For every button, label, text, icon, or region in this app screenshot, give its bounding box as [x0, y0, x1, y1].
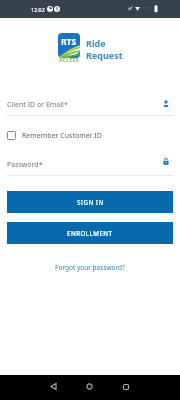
staticText: Remember Customer ID: [22, 131, 102, 141]
button[interactable]: Recents: [116, 377, 135, 396]
staticText: Client ID or Email*: [7, 100, 68, 110]
staticText: RTS: [61, 36, 77, 48]
button[interactable]: ENROLLMENT: [7, 222, 173, 244]
staticText: Ride: [86, 37, 106, 49]
staticText: Password*: [7, 160, 43, 170]
other: Password: [163, 158, 169, 165]
button[interactable]: Remember Customer ID: [7, 130, 102, 141]
staticText: Request: [86, 49, 123, 61]
other: Account: [163, 100, 169, 107]
staticText: 12:02: [31, 6, 45, 13]
staticText: SIGN IN: [77, 198, 104, 206]
staticText: ENROLLMENT: [67, 229, 113, 237]
staticText: ACCESS: [59, 57, 79, 64]
button[interactable]: Home: [80, 377, 99, 396]
button[interactable]: Back: [44, 377, 63, 396]
button[interactable]: Forgot your password?: [49, 261, 131, 274]
button[interactable]: SIGN IN: [7, 191, 173, 213]
